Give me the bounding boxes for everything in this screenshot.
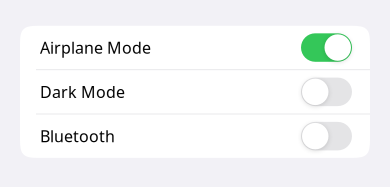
button[interactable]: Dark Mode <box>20 70 370 114</box>
staticText: Dark Mode <box>40 81 125 103</box>
button[interactable]: Airplane Mode <box>20 26 370 69</box>
staticText: Airplane Mode <box>40 37 151 58</box>
staticText: Bluetooth <box>40 125 115 147</box>
button[interactable]: Bluetooth <box>20 114 370 158</box>
